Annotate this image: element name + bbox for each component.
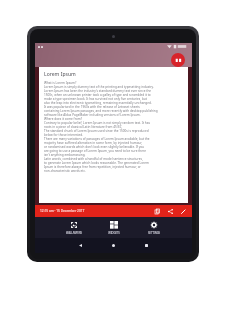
button[interactable]: Back bbox=[77, 242, 84, 249]
staticText: Latin words, combined with a handful of … bbox=[44, 157, 143, 161]
button[interactable]: WIDGETS bbox=[101, 219, 127, 237]
staticText: The standard chunk of Lorem Ipsum used s… bbox=[44, 129, 149, 133]
button[interactable]: Edit bbox=[179, 207, 187, 215]
button[interactable]: SETTINGS bbox=[141, 219, 167, 237]
staticText: to generate Lorem Ipsum which looks reas… bbox=[44, 161, 149, 165]
staticText: Contrary to popular belief, Lorem Ipsum … bbox=[44, 121, 150, 125]
staticText: below for those interested. bbox=[44, 133, 84, 137]
button[interactable]: New quote bbox=[171, 53, 185, 67]
button[interactable]: Recents bbox=[143, 242, 150, 249]
staticText: make a type specimen book. It has surviv… bbox=[44, 97, 147, 101]
staticText: majority have suffered alteration in som… bbox=[44, 141, 143, 145]
staticText: Lorem Ipsum is simply dummy text of the … bbox=[44, 85, 154, 89]
staticText: software like Aldus PageMaker including … bbox=[44, 113, 141, 117]
staticText: or randomised words which don't look eve… bbox=[44, 145, 145, 149]
staticText: Lorem Ipsum bbox=[44, 71, 76, 78]
button[interactable]: Copy bbox=[153, 207, 161, 215]
staticText: isn't anything embarrassing. bbox=[44, 153, 86, 157]
staticText: WIDGETS bbox=[108, 231, 120, 235]
staticText: Lorem Ipsum has been the industry's stan… bbox=[44, 89, 152, 93]
staticText: There are many variations of passages of… bbox=[44, 137, 150, 141]
staticText: What is Lorem Ipsum? bbox=[44, 81, 77, 85]
button[interactable]: Home bbox=[110, 242, 117, 249]
staticText: non-characteristic words etc. bbox=[44, 169, 86, 173]
button[interactable]: Share bbox=[166, 207, 174, 215]
staticText: are going to use a passage of Lorem Ipsu… bbox=[44, 149, 146, 153]
staticText: 1500s, when an unknown printer took a ga… bbox=[44, 93, 151, 97]
staticText: It was popularised in the 1960s with the… bbox=[44, 105, 140, 109]
button[interactable]: WALLPAPERS bbox=[61, 219, 87, 237]
staticText: 12:15 am · 15 December 2017 bbox=[40, 209, 85, 213]
staticText: roots in a piece of classical Latin lite… bbox=[44, 125, 123, 129]
staticText: WALLPAPERS bbox=[66, 231, 82, 235]
staticText: containing Lorem Ipsum passages, and mor… bbox=[44, 109, 158, 113]
staticText: SETTINGS bbox=[148, 231, 160, 235]
staticText: Ipsum is therefore always free from repe… bbox=[44, 165, 141, 169]
staticText: also the leap into electronic typesettin… bbox=[44, 101, 152, 105]
staticText: Where does it come from? bbox=[44, 117, 83, 121]
